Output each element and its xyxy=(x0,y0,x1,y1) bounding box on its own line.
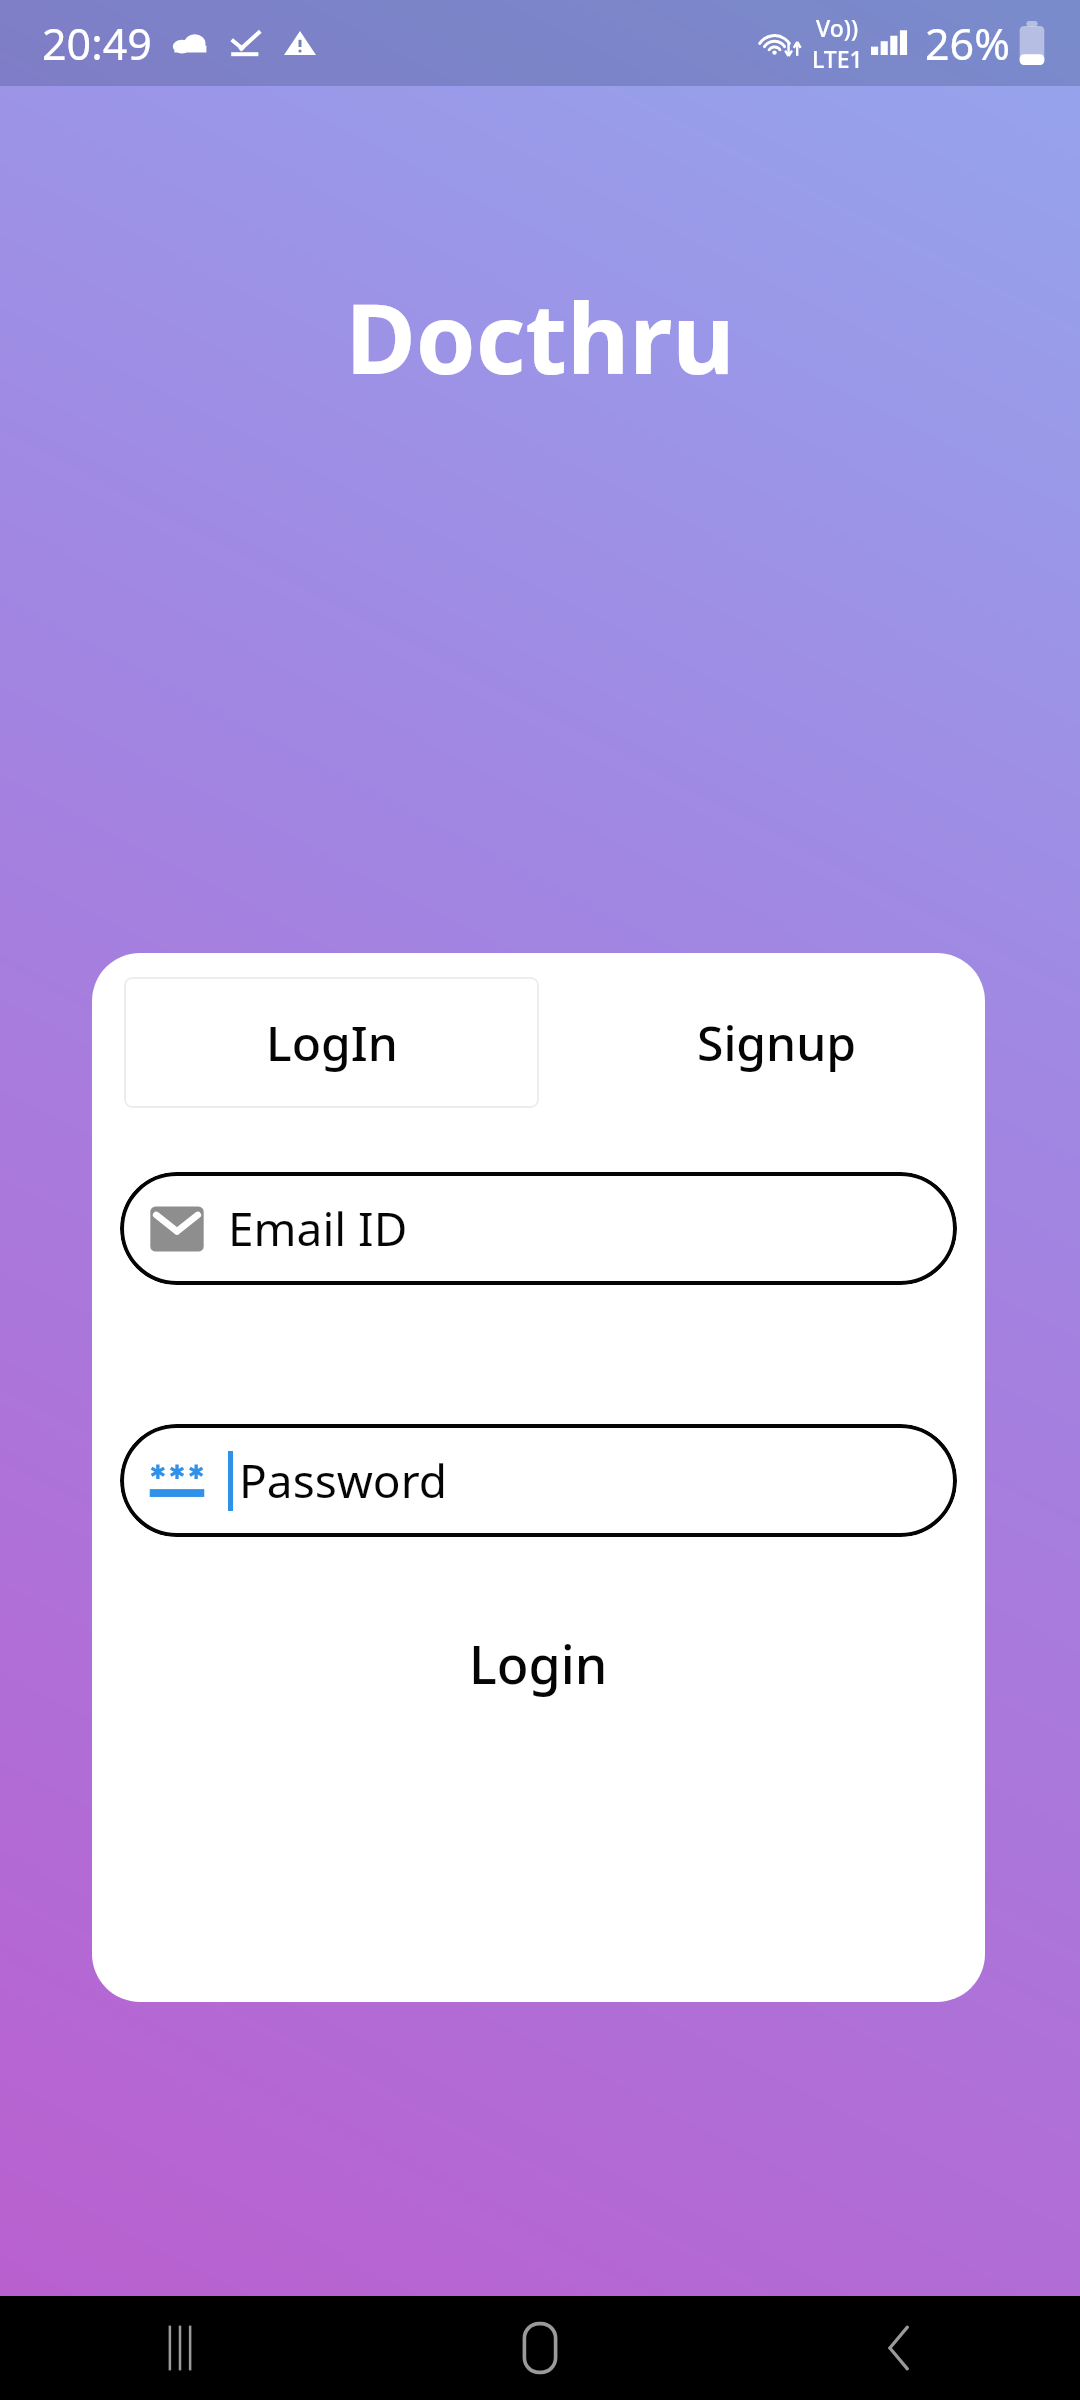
button[interactable]: LogIn xyxy=(124,977,539,1108)
button[interactable]: Signup xyxy=(569,977,985,1108)
button[interactable]: Email ID xyxy=(120,1172,957,1285)
staticText: Password xyxy=(239,1449,448,1512)
button[interactable]: Password xyxy=(120,1424,957,1537)
staticText: Email ID xyxy=(228,1197,408,1260)
staticText: Docthru xyxy=(0,271,1080,402)
staticText: Login xyxy=(469,1628,608,1699)
staticText: 20:49 xyxy=(42,14,152,73)
button[interactable]: Login xyxy=(92,1613,985,1713)
button[interactable]: Recent apps xyxy=(0,2296,360,2400)
button[interactable]: Back xyxy=(720,2296,1080,2400)
staticText: Vo)) xyxy=(816,12,859,43)
staticText: LTE1 xyxy=(812,43,863,74)
staticText: 26% xyxy=(925,14,1010,73)
staticText: Signup xyxy=(697,1010,857,1075)
staticText: LogIn xyxy=(266,1010,398,1075)
button[interactable]: Home xyxy=(360,2296,720,2400)
